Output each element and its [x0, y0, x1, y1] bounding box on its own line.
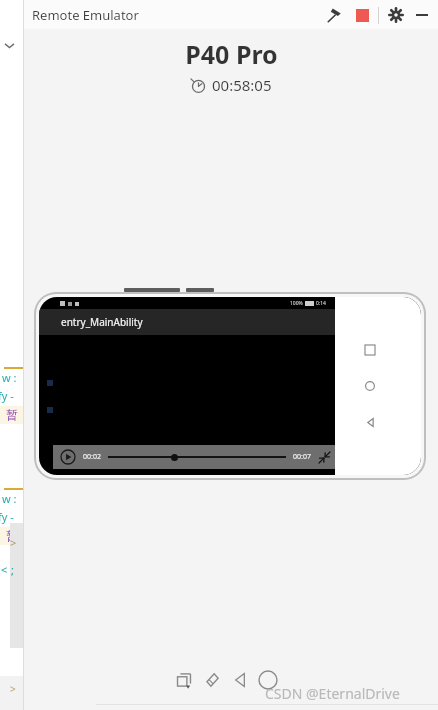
button[interactable]: Back [359, 411, 381, 433]
button[interactable] [108, 450, 286, 464]
button[interactable]: Home [254, 666, 282, 694]
staticText: > [10, 535, 17, 550]
staticText: 暂 [6, 407, 18, 422]
staticText: P40 Pro [185, 37, 278, 71]
staticText: Remote Emulator [32, 6, 139, 24]
button[interactable]: Pin window [321, 2, 347, 28]
staticText: 暂 [6, 528, 18, 543]
staticText: entry_MainAbility [61, 315, 143, 329]
button[interactable]: Back [226, 666, 254, 694]
button[interactable]: Minimize [410, 3, 434, 27]
staticText: fy - [0, 388, 14, 403]
staticText: w : [2, 370, 17, 385]
button[interactable]: Rotate [198, 666, 226, 694]
staticText: 00:02 [83, 452, 101, 462]
staticText: 00:07 [293, 452, 311, 462]
staticText: fy - [0, 509, 14, 524]
staticText: > [10, 682, 16, 696]
staticText: w : [2, 491, 17, 506]
button[interactable]: Screenshot options [170, 666, 198, 694]
button[interactable]: Recents [359, 339, 381, 361]
staticText: 00:58:05 [212, 75, 272, 95]
button[interactable]: Play [59, 448, 77, 466]
button[interactable]: Settings [384, 3, 408, 27]
button[interactable]: Exit full screen [316, 449, 332, 465]
button[interactable]: Home [359, 375, 381, 397]
staticText: CSDN @EternalDrive [265, 684, 400, 703]
staticText: < [1, 562, 8, 577]
button[interactable]: Stop [351, 4, 373, 26]
staticText: 100% [290, 300, 303, 307]
staticText: 0:14 [316, 300, 326, 307]
staticText: ; [11, 562, 14, 577]
